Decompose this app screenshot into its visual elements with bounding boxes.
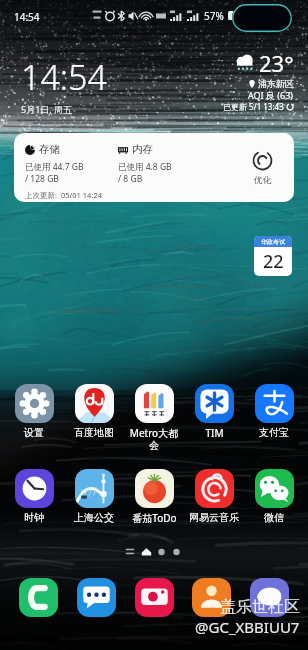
staticText: 番茄ToDo — [132, 511, 177, 525]
staticText: 华政考试 — [261, 238, 285, 246]
staticText: 已使用 44.7 GB — [25, 161, 84, 173]
staticText: Metro大都会 — [128, 426, 180, 452]
staticText: TIM — [205, 426, 224, 440]
button[interactable]: 番茄ToDo — [128, 469, 180, 525]
staticText: / 8 GB — [118, 173, 143, 185]
staticText: AQI 良 (63) — [248, 89, 294, 101]
button[interactable]: 存储 — [14, 133, 294, 202]
staticText: 支付宝 — [259, 426, 289, 439]
staticText: 优化 — [254, 175, 271, 186]
staticText: @GC_XBBIUU7 — [195, 617, 300, 637]
button[interactable]: Camera — [135, 578, 174, 617]
button[interactable]: TIM — [188, 384, 240, 440]
staticText: 内存 — [132, 143, 153, 156]
button[interactable]: Phone — [19, 578, 58, 617]
staticText: 时钟 — [24, 511, 44, 524]
staticText: 22 — [263, 249, 284, 274]
button[interactable]: 支付宝 — [248, 384, 300, 439]
staticText: 5月1日, 周五 — [21, 103, 73, 115]
staticText: 设置 — [24, 426, 44, 439]
staticText: 上海公交 — [74, 511, 114, 524]
button[interactable]: 网易云音乐 — [188, 469, 240, 524]
staticText: / 128 GB — [25, 173, 59, 185]
staticText: 网易云音乐 — [189, 511, 239, 524]
staticText: 57% — [204, 9, 224, 23]
staticText: 百度地图 — [74, 426, 114, 439]
button[interactable]: 华政考试 — [254, 236, 292, 276]
button[interactable]: 设置 — [8, 384, 60, 439]
button[interactable]: Contacts — [192, 578, 231, 617]
staticText: 微信 — [264, 511, 284, 524]
staticText: 已更新 5/1 13:43 — [223, 101, 284, 112]
staticText: 23° — [259, 48, 294, 78]
staticText: 14:54 — [14, 10, 40, 24]
button[interactable]: 时钟 — [8, 469, 60, 524]
button[interactable]: 百度地图 — [68, 384, 120, 439]
staticText: 盖乐世社区 — [220, 597, 300, 617]
button[interactable]: 微信 — [248, 469, 300, 524]
staticText: 上次更新: 05/01 14:24 — [25, 190, 102, 200]
button[interactable]: Messages — [77, 578, 116, 617]
button[interactable]: Metro大都会 — [128, 384, 180, 452]
staticText: 浦东新区 — [258, 78, 294, 89]
staticText: 已使用 4.8 GB — [118, 161, 172, 173]
staticText: 存储 — [39, 143, 60, 156]
staticText: 14:54 — [21, 54, 107, 100]
button[interactable]: 上海公交 — [68, 469, 120, 524]
button[interactable]: Gallery — [250, 578, 289, 617]
